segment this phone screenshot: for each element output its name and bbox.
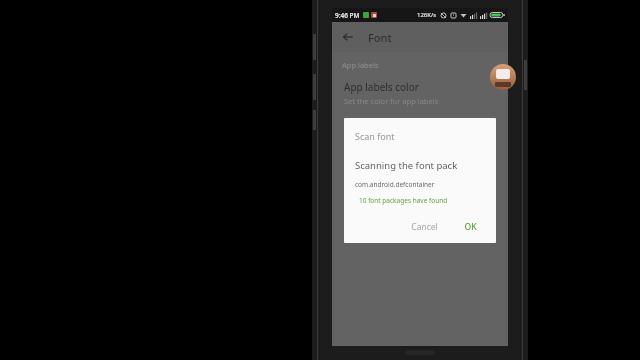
- staticText: App labels: [342, 60, 379, 70]
- staticText: com.android.defcontainer: [355, 180, 435, 189]
- staticText: Scanning the font pack: [355, 159, 458, 172]
- staticText: 9:46 PM: [335, 11, 360, 20]
- staticText: OK: [464, 221, 477, 233]
- button[interactable]: Profile: [490, 64, 516, 90]
- staticText: 126K/s: [417, 11, 437, 19]
- button[interactable]: App labels color: [332, 78, 508, 112]
- staticText: App labels color: [344, 80, 419, 94]
- button[interactable]: Back: [338, 27, 358, 47]
- staticText: Scan font: [355, 130, 395, 142]
- staticText: 10 font packages have found: [359, 196, 448, 205]
- button[interactable]: Cancel: [404, 217, 445, 237]
- staticText: Font: [368, 30, 392, 45]
- staticText: Cancel: [411, 221, 438, 233]
- button[interactable]: OK: [457, 217, 484, 237]
- staticText: Set the color for app labels: [344, 96, 439, 106]
